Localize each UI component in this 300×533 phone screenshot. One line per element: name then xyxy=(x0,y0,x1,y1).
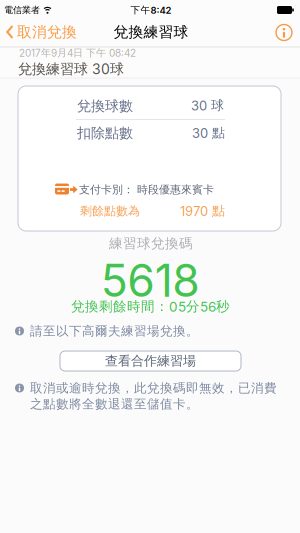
staticText: 下午8:42 xyxy=(130,4,171,16)
staticText: 30 點 xyxy=(192,125,225,141)
staticText: 之點數將全數退還至儲值卡。 xyxy=(30,396,199,412)
staticText: 請至以下高爾夫練習場兌換。 xyxy=(30,323,199,339)
staticText: 兌換剩餘時間：05分56秒 xyxy=(71,298,230,315)
staticText: 兌換練習球 30球 xyxy=(18,60,124,78)
button[interactable]: 查看合作練習場 xyxy=(60,351,241,371)
button[interactable]: 取消兌換 xyxy=(6,18,86,45)
staticText: 2017年9月4日 下午 08:42 xyxy=(19,47,136,59)
button[interactable]: 資訊 xyxy=(269,19,299,46)
staticText: 取消兌換 xyxy=(17,23,77,41)
staticText: 扣除點數 xyxy=(77,124,133,142)
staticText: 電信業者 xyxy=(4,4,40,16)
staticText: 練習球兌換碼 xyxy=(109,235,193,252)
staticText: 查看合作練習場 xyxy=(105,353,196,369)
staticText: 支付卡別： 時段優惠來賓卡 xyxy=(79,183,214,196)
staticText: 剩餘點數為 xyxy=(80,203,140,218)
staticText: 1970 點 xyxy=(180,203,225,219)
staticText: 兌換練習球 xyxy=(113,23,188,41)
staticText: 5618 xyxy=(101,254,200,307)
staticText: 取消或逾時兌換，此兌換碼即無效，已消費 xyxy=(30,380,277,396)
staticText: 30 球 xyxy=(191,97,224,114)
staticText: 兌換球數 xyxy=(77,97,133,115)
